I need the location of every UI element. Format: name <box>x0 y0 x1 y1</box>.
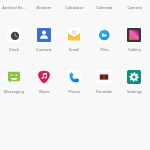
button[interactable]: Contacts <box>29 28 59 52</box>
button[interactable]: Calculator <box>59 0 89 10</box>
staticText: Messaging <box>4 89 24 94</box>
other: Messaging <box>7 70 21 84</box>
button[interactable]: Phone <box>59 70 89 94</box>
button[interactable]: Settings <box>119 70 149 94</box>
staticText: Email <box>69 47 79 52</box>
other: Recorder <box>97 70 111 84</box>
button[interactable]: Recorder <box>89 70 119 94</box>
other: Files <box>97 28 111 42</box>
other: Phone <box>67 70 81 84</box>
staticText: Gallery <box>128 47 141 52</box>
staticText: Android Ke... <box>2 5 26 10</box>
button[interactable]: Clock <box>0 28 29 52</box>
button[interactable]: Camera <box>119 0 149 10</box>
button[interactable]: Email <box>59 28 89 52</box>
other: Music <box>37 70 51 84</box>
other: Settings <box>127 70 141 84</box>
other: Email <box>67 28 81 42</box>
button[interactable]: Android Ke... <box>0 0 29 10</box>
staticText: Contacts <box>36 47 52 52</box>
staticText: Browser <box>36 5 52 10</box>
other: Clock <box>7 28 21 42</box>
button[interactable]: Files <box>89 28 119 52</box>
staticText: Recorder <box>96 89 113 94</box>
staticText: Phone <box>68 89 80 94</box>
button[interactable]: Browser <box>29 0 59 10</box>
button[interactable]: Calendar <box>89 0 119 10</box>
other: Gallery <box>127 28 141 42</box>
staticText: Settings <box>127 89 142 94</box>
staticText: Camera <box>127 5 142 10</box>
staticText: Calculator <box>65 5 84 10</box>
staticText: Calendar <box>96 5 113 10</box>
staticText: Files <box>100 47 109 52</box>
button[interactable]: Gallery <box>119 28 149 52</box>
staticText: Clock <box>9 47 19 52</box>
button[interactable]: Messaging <box>0 70 29 94</box>
staticText: Music <box>39 89 50 94</box>
button[interactable]: Music <box>29 70 59 94</box>
other: Contacts <box>37 28 51 42</box>
